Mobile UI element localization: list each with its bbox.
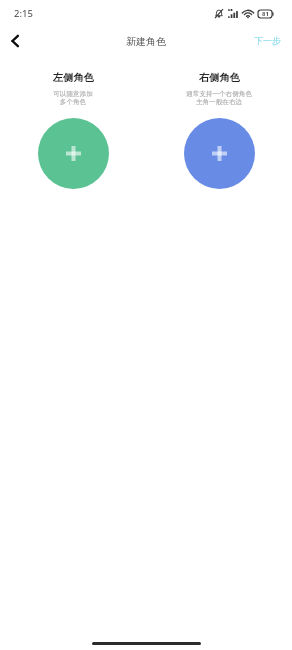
staticText: 下一步	[254, 35, 281, 46]
staticText: 2:15	[14, 7, 33, 20]
staticText: 新建角色	[126, 35, 166, 48]
staticText: 左侧角色	[53, 71, 94, 84]
button[interactable]: Add role	[38, 118, 109, 189]
button[interactable]: Back	[0, 26, 30, 56]
staticText: 通常支持一个右侧角色 主角一般在右边	[186, 90, 252, 106]
staticText: 可以随意添加 多个角色	[53, 90, 93, 106]
staticText: 81	[262, 10, 269, 18]
button[interactable]: 下一步	[243, 30, 292, 53]
button[interactable]: Add role	[184, 118, 255, 189]
staticText: 右侧角色	[199, 71, 240, 84]
